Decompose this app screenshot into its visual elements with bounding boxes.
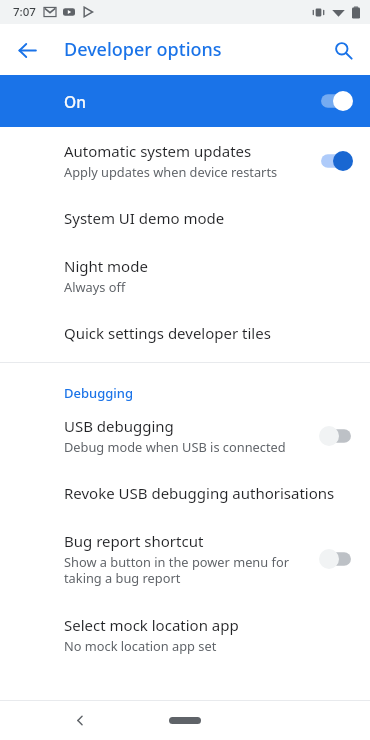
button[interactable]: USB debugging <box>0 402 370 469</box>
button[interactable]: Quick settings developer tiles <box>0 309 370 357</box>
button[interactable]: Automatic system updates toggle <box>319 151 353 171</box>
staticText: Quick settings developer tiles <box>64 323 271 343</box>
staticText: System UI demo mode <box>64 208 225 228</box>
staticText: Debug mode when USB is connected <box>64 438 286 455</box>
button[interactable]: Search <box>324 31 362 69</box>
staticText: Debugging <box>64 384 134 402</box>
button[interactable]: System UI demo mode <box>0 194 370 242</box>
button[interactable]: Back <box>9 32 45 68</box>
staticText: Automatic system updates <box>64 141 252 161</box>
staticText: Select mock location app <box>64 615 239 635</box>
staticText: 7:07 <box>13 4 36 20</box>
button[interactable]: Home <box>155 707 215 733</box>
button[interactable]: Bug report shortcut toggle <box>319 549 353 569</box>
staticText: On <box>64 91 319 112</box>
staticText: Show a button in the power menu for taki… <box>64 553 289 587</box>
button[interactable]: On <box>0 75 370 127</box>
staticText: Bug report shortcut <box>64 531 204 551</box>
staticText: Night mode <box>64 256 148 276</box>
staticText: USB debugging <box>64 416 174 436</box>
button[interactable]: Back <box>62 702 98 738</box>
staticText: Always off <box>64 278 126 295</box>
staticText: No mock location app set <box>64 637 217 654</box>
button[interactable]: Automatic system updates <box>0 127 370 194</box>
button[interactable]: Revoke USB debugging authorisations <box>0 469 370 517</box>
button[interactable]: Night mode <box>0 242 370 309</box>
staticText: Developer options <box>64 37 222 62</box>
button[interactable]: USB debugging toggle <box>319 426 353 446</box>
staticText: Revoke USB debugging authorisations <box>64 483 335 503</box>
button[interactable]: Select mock location app <box>0 601 370 668</box>
staticText: Apply updates when device restarts <box>64 163 278 180</box>
button[interactable]: Bug report shortcut <box>0 517 370 601</box>
